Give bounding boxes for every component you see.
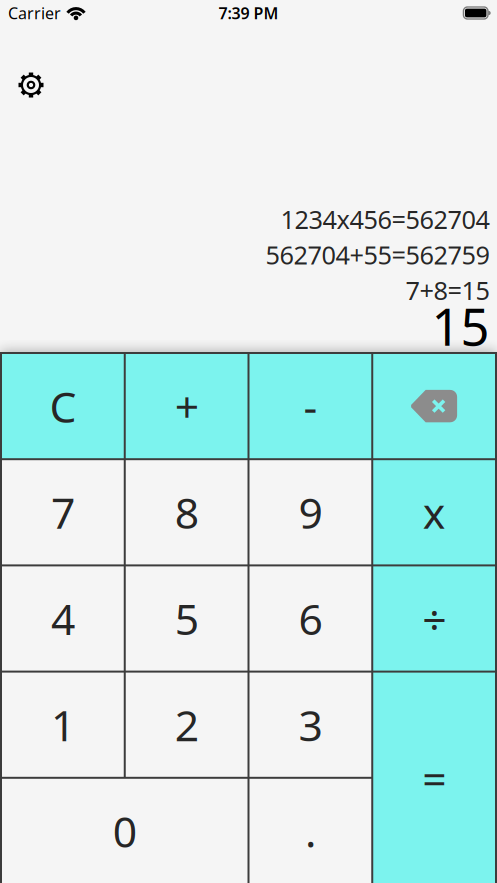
staticText: C	[49, 378, 76, 434]
button[interactable]: +	[126, 354, 248, 458]
button[interactable]: 9	[249, 460, 371, 564]
button[interactable]: 1	[2, 673, 124, 777]
staticText: 7	[51, 484, 75, 541]
staticText: 7+8=15	[405, 273, 489, 307]
button[interactable]: x	[373, 460, 495, 564]
staticText: 562704+55=562759	[265, 238, 489, 271]
button[interactable]: =	[373, 673, 495, 883]
button[interactable]: 2	[126, 673, 248, 777]
staticText: 8	[175, 484, 199, 541]
button[interactable]: 4	[2, 566, 124, 671]
staticText: .	[305, 803, 316, 859]
button[interactable]: 7	[2, 460, 124, 564]
staticText: 6	[298, 590, 322, 647]
button[interactable]: 6	[249, 566, 371, 671]
staticText: 1	[51, 696, 75, 753]
button[interactable]	[17, 71, 45, 99]
staticText: ÷	[422, 590, 446, 647]
button[interactable]: -	[249, 354, 371, 458]
button[interactable]: 3	[249, 673, 371, 777]
button[interactable]	[373, 354, 495, 458]
button[interactable]: 5	[126, 566, 248, 671]
staticText: =	[422, 749, 446, 806]
staticText: -	[303, 378, 317, 434]
staticText: Carrier	[8, 2, 61, 24]
staticText: 3	[298, 696, 322, 753]
button[interactable]: 8	[126, 460, 248, 564]
staticText: 15	[431, 292, 489, 360]
staticText: +	[175, 378, 199, 434]
button[interactable]: ÷	[373, 566, 495, 671]
staticText: 0	[113, 803, 137, 859]
staticText: 7:39 PM	[218, 2, 278, 24]
staticText: 9	[298, 484, 322, 541]
staticText: 1234x456=562704	[280, 202, 489, 236]
button[interactable]: 0	[2, 779, 247, 883]
staticText: 4	[51, 590, 75, 647]
staticText: x	[423, 484, 446, 541]
staticText: 5	[175, 590, 199, 647]
button[interactable]: C	[2, 354, 124, 458]
button[interactable]: .	[249, 779, 371, 883]
staticText: 2	[175, 696, 199, 753]
